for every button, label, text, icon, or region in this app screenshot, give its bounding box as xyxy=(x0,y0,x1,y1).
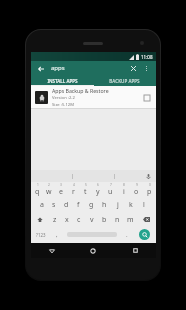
button[interactable]: Select app xyxy=(141,92,152,103)
button[interactable]: s xyxy=(48,197,60,212)
button[interactable]: 3 xyxy=(55,182,67,197)
staticText: INSTALL APPS xyxy=(47,78,78,84)
button[interactable]: j xyxy=(111,197,124,212)
staticText: . xyxy=(126,231,128,239)
button[interactable]: 4 xyxy=(67,182,79,197)
staticText: q xyxy=(35,187,40,197)
button[interactable]: v xyxy=(85,212,98,227)
staticText: b xyxy=(102,215,107,225)
button[interactable]: d xyxy=(60,197,72,212)
button[interactable]: , xyxy=(50,227,63,242)
staticText: h xyxy=(102,200,107,210)
button[interactable]: . xyxy=(120,227,133,242)
staticText: 8 xyxy=(123,183,125,187)
button[interactable]: Back xyxy=(35,63,46,74)
staticText: o xyxy=(134,187,139,197)
button[interactable]: BACKUP APPS xyxy=(93,75,156,86)
button[interactable]: z xyxy=(49,212,61,227)
button[interactable]: 9 xyxy=(130,182,143,197)
staticText: 7 xyxy=(110,183,112,187)
staticText: j xyxy=(117,200,119,210)
staticText: k xyxy=(129,200,133,210)
staticText: Apps Backup & Restore xyxy=(52,87,109,94)
staticText: y xyxy=(96,187,100,197)
button[interactable]: 8 xyxy=(117,182,130,197)
button[interactable]: 0 xyxy=(143,182,156,197)
staticText: BACKUP APPS xyxy=(109,78,140,84)
staticText: t xyxy=(84,187,87,197)
button[interactable]: INSTALL APPS xyxy=(31,75,93,86)
staticText: 1 xyxy=(37,183,39,187)
button[interactable]: n xyxy=(111,212,124,227)
button[interactable]: 2 xyxy=(43,182,55,197)
staticText: ?123 xyxy=(36,232,46,238)
button[interactable]: Space xyxy=(63,227,120,242)
staticText: 9 xyxy=(136,183,138,187)
staticText: p xyxy=(147,187,152,197)
button[interactable]: l xyxy=(137,197,150,212)
staticText: 11:08 xyxy=(141,54,153,60)
button[interactable]: ?123 xyxy=(31,227,50,242)
button[interactable]: Back xyxy=(31,243,72,258)
staticText: i xyxy=(123,187,125,197)
staticText: apps xyxy=(51,64,128,72)
button[interactable]: Voice input xyxy=(115,170,156,182)
button[interactable]: x xyxy=(61,212,73,227)
staticText: 5 xyxy=(85,183,87,187)
button[interactable]: Recents xyxy=(114,243,156,258)
staticText: 4 xyxy=(73,183,75,187)
staticText: n xyxy=(115,215,120,225)
button[interactable]: f xyxy=(72,197,85,212)
button[interactable]: Backspace xyxy=(137,212,156,227)
staticText: m xyxy=(127,215,134,225)
staticText: e xyxy=(59,187,63,197)
button[interactable]: More options xyxy=(141,63,152,74)
staticText: u xyxy=(108,187,113,197)
staticText: z xyxy=(53,215,57,225)
button[interactable]: c xyxy=(73,212,85,227)
staticText: 0 xyxy=(149,183,151,187)
button[interactable]: Search xyxy=(139,229,150,240)
staticText: w xyxy=(46,187,52,197)
button[interactable]: a xyxy=(36,197,48,212)
staticText: r xyxy=(72,187,75,197)
staticText: Size :5.12M xyxy=(52,102,75,108)
staticText: f xyxy=(77,200,80,210)
staticText: g xyxy=(89,200,94,210)
button[interactable]: b xyxy=(98,212,111,227)
button[interactable]: Voice input xyxy=(144,172,152,180)
staticText: x xyxy=(65,215,69,225)
staticText: , xyxy=(56,231,58,239)
button[interactable]: Home xyxy=(72,243,114,258)
staticText: c xyxy=(77,215,81,225)
button[interactable]: 5 xyxy=(79,182,91,197)
staticText: d xyxy=(64,200,69,210)
staticText: 6 xyxy=(97,183,99,187)
staticText: 3 xyxy=(60,183,62,187)
button[interactable]: Clear search xyxy=(128,63,139,74)
button[interactable]: m xyxy=(124,212,137,227)
button[interactable]: Apps Backup & Restore xyxy=(31,86,156,108)
button[interactable]: k xyxy=(124,197,137,212)
staticText: a xyxy=(40,200,44,210)
staticText: 2 xyxy=(48,183,50,187)
staticText: s xyxy=(52,200,56,210)
button[interactable]: 6 xyxy=(91,182,104,197)
button[interactable]: g xyxy=(85,197,98,212)
button[interactable]: Shift xyxy=(31,212,49,227)
button[interactable]: 1 xyxy=(31,182,43,197)
button[interactable]: 7 xyxy=(104,182,117,197)
staticText: Version :2.2 xyxy=(52,95,75,101)
staticText: l xyxy=(143,200,145,210)
button[interactable]: h xyxy=(98,197,111,212)
staticText: v xyxy=(90,215,94,225)
